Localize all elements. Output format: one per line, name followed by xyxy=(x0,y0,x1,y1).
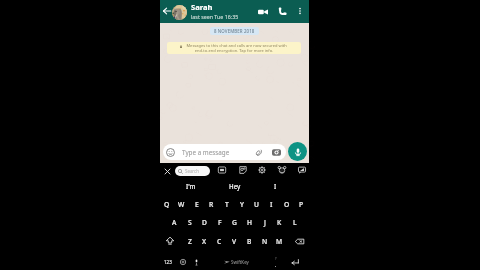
staticText: R xyxy=(209,200,214,209)
button[interactable]: J xyxy=(257,216,272,228)
staticText: Search xyxy=(185,168,199,174)
button[interactable]: I xyxy=(261,180,290,191)
other: Camera xyxy=(272,148,281,157)
button[interactable]: M xyxy=(272,235,287,247)
staticText: N xyxy=(262,237,268,246)
button[interactable]: Settings xyxy=(256,164,268,176)
staticText: Y xyxy=(240,200,244,209)
button[interactable]: Close keyboard toolbar xyxy=(161,165,174,178)
button[interactable]: B xyxy=(242,235,257,247)
staticText: U xyxy=(254,200,259,209)
staticText: K xyxy=(277,218,282,227)
button[interactable]: Back xyxy=(160,4,174,18)
staticText: P xyxy=(299,200,304,209)
staticText: 123 xyxy=(164,259,172,265)
staticText: J xyxy=(264,218,266,227)
button[interactable]: Switch language xyxy=(176,256,189,268)
button[interactable]: GIFs xyxy=(216,164,228,176)
staticText: M xyxy=(276,237,283,246)
button[interactable]: Clipboard xyxy=(296,164,308,176)
button[interactable]: Z xyxy=(183,235,197,247)
button[interactable]: P xyxy=(294,198,309,210)
staticText: X xyxy=(202,237,207,246)
button[interactable]: W xyxy=(174,198,189,210)
button[interactable]: Voice input xyxy=(190,256,202,268)
staticText: F xyxy=(218,218,222,227)
staticText: L xyxy=(293,218,297,227)
button[interactable]: I xyxy=(264,198,279,210)
other: Attach xyxy=(254,148,263,157)
staticText: I xyxy=(270,200,273,209)
staticText: S xyxy=(188,218,192,227)
staticText: ? xyxy=(275,256,277,261)
staticText: Type a message xyxy=(182,148,230,157)
staticText: Q xyxy=(164,200,170,209)
button[interactable]: G xyxy=(227,216,242,228)
button[interactable]: 123 xyxy=(160,256,176,268)
button[interactable]: F xyxy=(212,216,227,228)
button[interactable]: C xyxy=(212,235,227,247)
staticText: 8 NOVEMBER 2018 xyxy=(214,28,255,34)
button[interactable]: Backspace xyxy=(287,235,309,247)
button[interactable]: H xyxy=(242,216,257,228)
button[interactable]: T xyxy=(219,198,234,210)
staticText: Z xyxy=(188,237,192,246)
staticText: W xyxy=(178,200,185,209)
button[interactable]: Enter xyxy=(287,256,303,268)
button[interactable]: Emoji xyxy=(276,164,288,176)
button[interactable]: V xyxy=(227,235,242,247)
staticText: B xyxy=(247,237,252,246)
button[interactable]: N xyxy=(257,235,272,247)
staticText: Messages to this chat and calls are now … xyxy=(178,43,290,53)
button[interactable]: U xyxy=(249,198,264,210)
staticText: D xyxy=(202,218,207,227)
staticText: T xyxy=(225,200,229,209)
staticText: I xyxy=(274,182,277,190)
staticText: SwiftKey xyxy=(231,259,249,265)
staticText: H xyxy=(247,218,253,227)
staticText: . xyxy=(275,261,277,268)
button[interactable]: E xyxy=(189,198,204,210)
button[interactable]: ? xyxy=(269,256,282,268)
button[interactable]: D xyxy=(197,216,212,228)
button[interactable]: R xyxy=(204,198,219,210)
button[interactable]: Type a message xyxy=(163,144,286,160)
button[interactable]: S xyxy=(182,216,197,228)
staticText: E xyxy=(195,200,199,209)
button[interactable]: Call xyxy=(275,4,289,18)
staticText: A xyxy=(172,218,177,227)
staticText: Sarah xyxy=(191,2,213,12)
button[interactable]: L xyxy=(287,216,302,228)
button[interactable]: A xyxy=(167,216,182,228)
staticText: C xyxy=(217,237,222,246)
button[interactable]: Space xyxy=(204,256,268,268)
button[interactable]: X xyxy=(197,235,212,247)
button[interactable]: Search xyxy=(175,166,210,176)
staticText: Hey xyxy=(229,182,241,190)
button[interactable]: O xyxy=(279,198,294,210)
button[interactable]: Voice message xyxy=(288,142,307,161)
button[interactable]: More options xyxy=(293,4,306,17)
staticText: last seen Tue 16:35 xyxy=(191,13,239,20)
button[interactable]: Stickers xyxy=(237,164,249,176)
button[interactable]: Shift xyxy=(160,235,183,247)
button[interactable]: Messages to this chat and calls are now … xyxy=(167,42,301,54)
button[interactable]: Q xyxy=(160,198,174,210)
staticText: G xyxy=(232,218,237,227)
staticText: I'm xyxy=(186,182,196,190)
button[interactable]: Hey xyxy=(220,180,250,191)
button[interactable]: K xyxy=(272,216,287,228)
button[interactable]: Video call xyxy=(255,4,270,19)
staticText: V xyxy=(232,237,237,246)
staticText: O xyxy=(284,200,290,209)
button[interactable]: Y xyxy=(234,198,249,210)
button[interactable]: I'm xyxy=(176,180,205,191)
